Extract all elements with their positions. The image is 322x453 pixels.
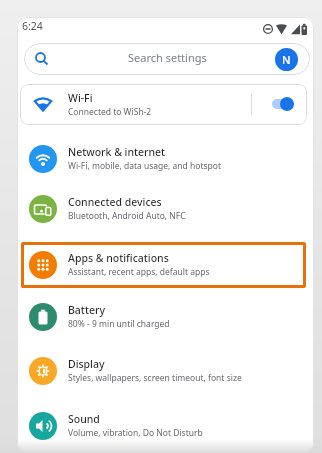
staticText: Styles, wallpapers, screen timeout, font…	[68, 372, 242, 384]
button[interactable]: Network & internet	[17, 134, 310, 184]
button[interactable]: Battery	[17, 292, 310, 342]
staticText: Volume, vibration, Do Not Disturb	[68, 427, 203, 439]
staticText: N	[282, 52, 291, 67]
button[interactable]: Connected devices	[17, 184, 310, 234]
button[interactable]: Display	[17, 346, 310, 396]
button[interactable]: Apps & notifications	[17, 240, 310, 290]
staticText: Apps & notifications	[68, 251, 169, 265]
staticText: Display	[68, 357, 105, 371]
button[interactable]: Search settings	[24, 43, 310, 75]
button[interactable]: N	[275, 48, 298, 71]
staticText: 6:24	[22, 19, 43, 33]
button[interactable]: Wi-Fi	[20, 84, 307, 125]
staticText: Assistant, recent apps, default apps	[68, 266, 210, 278]
staticText: Wi-Fi, mobile, data usage, and hotspot	[68, 160, 221, 172]
staticText: Connected to WiSh-2	[68, 106, 152, 118]
staticText: Network & internet	[68, 145, 166, 159]
staticText: Search settings	[128, 50, 207, 65]
button[interactable]	[280, 97, 294, 111]
button[interactable]: Sound	[17, 401, 310, 451]
staticText: 80% - 9 min until charged	[68, 318, 170, 330]
staticText: Wi-Fi	[68, 91, 93, 105]
staticText: Battery	[68, 303, 105, 317]
staticText: Sound	[68, 412, 100, 426]
staticText: Bluetooth, Android Auto, NFC	[68, 210, 186, 222]
staticText: Connected devices	[68, 195, 162, 209]
